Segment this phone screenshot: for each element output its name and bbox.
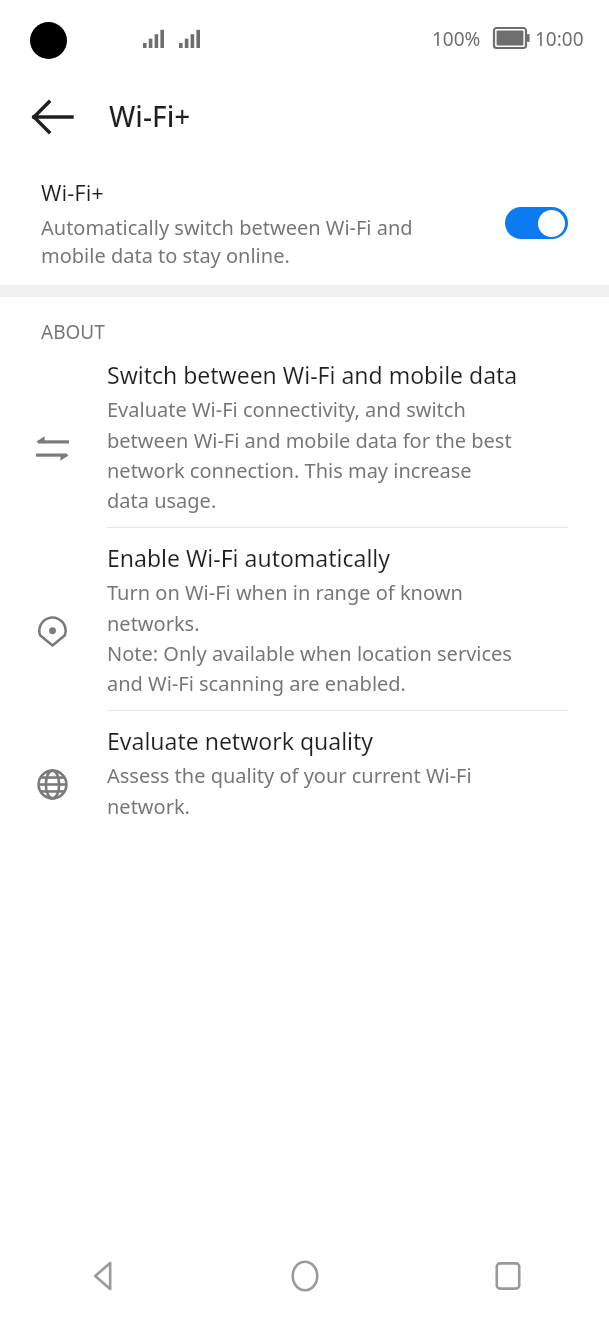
button[interactable]: Back — [22, 86, 84, 148]
button[interactable]: Wi-Fi+ — [0, 162, 609, 284]
staticText: Enable Wi-Fi automatically — [107, 542, 391, 573]
staticText: Wi-Fi+ — [109, 97, 191, 135]
button[interactable]: Switch between Wi-Fi and mobile data — [0, 359, 609, 542]
staticText: 100% — [432, 26, 481, 52]
staticText: 10:00 — [535, 26, 584, 52]
button[interactable]: Back — [0, 1232, 203, 1320]
button[interactable]: Wi-Fi+ toggle — [505, 207, 568, 239]
staticText: Switch between Wi-Fi and mobile data — [107, 359, 518, 390]
staticText: Evaluate network quality — [107, 725, 374, 756]
button[interactable]: Home — [203, 1232, 406, 1320]
staticText: Assess the quality of your current Wi-Fi… — [107, 762, 472, 819]
button[interactable]: Recent apps — [406, 1232, 609, 1320]
staticText: Evaluate Wi-Fi connectivity, and switch … — [107, 396, 512, 513]
staticText: Wi-Fi+ — [41, 177, 104, 207]
staticText: Turn on Wi-Fi when in range of known net… — [107, 579, 512, 696]
button[interactable]: Enable Wi-Fi automatically — [0, 542, 609, 725]
staticText: Automatically switch between Wi-Fi and m… — [41, 214, 413, 269]
staticText: ABOUT — [41, 319, 105, 345]
button[interactable]: Evaluate network quality — [0, 725, 609, 819]
